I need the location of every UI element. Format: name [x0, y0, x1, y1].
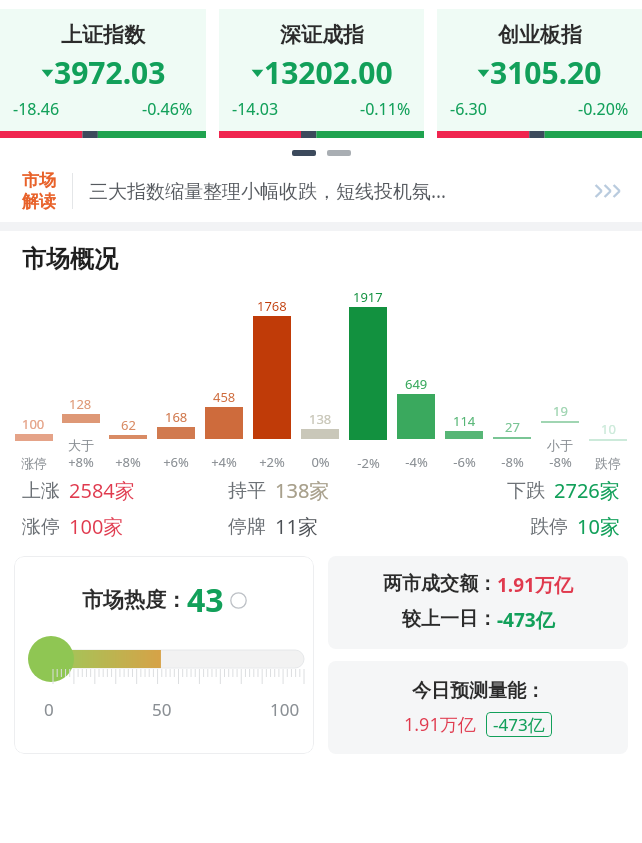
button[interactable]: 114 — [440, 288, 488, 471]
staticText: 跌停 — [595, 455, 621, 471]
staticText: 100 — [22, 415, 45, 433]
other: Help — [230, 592, 247, 609]
staticText: 三大指数缩量整理小幅收跌，短线投机氛… — [89, 178, 447, 204]
staticText: 上证指数 — [61, 22, 145, 48]
staticText: 1.91万亿 — [497, 572, 573, 598]
staticText: 创业板指 — [498, 22, 582, 48]
staticText: 0% — [311, 453, 330, 471]
staticText: 解读 — [22, 191, 56, 212]
staticText: 市场概况 — [22, 244, 118, 274]
staticText: 3105.20 — [490, 52, 602, 93]
staticText: 138家 — [275, 477, 330, 504]
staticText: 114 — [453, 412, 476, 430]
staticText: +2% — [259, 453, 285, 471]
staticText: 458 — [213, 388, 236, 406]
staticText: 2726家 — [554, 477, 620, 504]
button[interactable]: 128 — [57, 288, 104, 471]
staticText: 上涨 — [22, 479, 60, 503]
staticText: 11家 — [275, 513, 318, 540]
button[interactable]: 100 — [10, 288, 57, 471]
staticText: +8% — [68, 453, 94, 471]
button[interactable]: 两市成交额： — [328, 556, 628, 649]
staticText: +6% — [163, 453, 189, 471]
staticText: 下跌 — [507, 479, 545, 503]
button[interactable]: 今日预测量能： — [328, 661, 628, 754]
staticText: 2584家 — [69, 477, 135, 504]
staticText: 19 — [553, 402, 568, 420]
staticText: 43 — [187, 578, 224, 622]
staticText: 市场 — [22, 170, 56, 191]
button[interactable]: 市场 — [0, 160, 642, 222]
staticText: 10 — [601, 420, 616, 438]
staticText: 27 — [505, 418, 520, 436]
staticText: 1.91万亿 — [404, 712, 476, 737]
staticText: 涨停 — [22, 515, 60, 539]
button[interactable]: 深证成指 — [219, 9, 424, 138]
staticText: 10家 — [577, 513, 620, 540]
staticText: 今日预测量能： — [412, 679, 545, 703]
staticText: -6.30 — [450, 98, 487, 120]
button[interactable]: 创业板指 — [437, 9, 642, 138]
staticText: 0 — [44, 698, 54, 721]
button[interactable]: 649 — [392, 288, 440, 471]
staticText: -6% — [453, 453, 476, 471]
staticText: 大于 — [68, 437, 94, 453]
button[interactable]: 458 — [200, 288, 248, 471]
button[interactable]: 138 — [296, 288, 344, 471]
button[interactable]: 上证指数 — [0, 9, 206, 138]
staticText: -4% — [405, 453, 428, 471]
staticText: 跌停 — [530, 515, 568, 539]
staticText: 13202.00 — [264, 52, 393, 93]
staticText: -14.03 — [232, 98, 279, 120]
staticText: -0.46% — [142, 98, 193, 120]
staticText: 深证成指 — [280, 22, 364, 48]
staticText: 较上一日： — [402, 607, 497, 631]
staticText: -2% — [357, 454, 380, 471]
staticText: 停牌 — [228, 515, 266, 539]
staticText: 小于 — [547, 437, 573, 453]
staticText: 138 — [309, 410, 332, 428]
button[interactable]: 1768 — [248, 288, 296, 471]
button[interactable]: 市场热度： — [14, 556, 314, 754]
staticText: 市场热度： — [82, 587, 187, 613]
staticText: -8% — [549, 453, 572, 471]
button[interactable]: 1917 — [344, 288, 392, 471]
staticText: 持平 — [228, 479, 266, 503]
staticText: 涨停 — [21, 455, 47, 471]
staticText: -8% — [501, 453, 524, 471]
staticText: -0.11% — [360, 98, 411, 120]
button[interactable]: 10 — [584, 288, 632, 471]
staticText: +8% — [115, 453, 141, 471]
button[interactable]: 168 — [152, 288, 200, 471]
other: More — [592, 181, 628, 201]
staticText: 3972.03 — [54, 52, 166, 93]
staticText: 两市成交额： — [383, 572, 497, 596]
staticText: 649 — [405, 375, 428, 393]
staticText: 100家 — [69, 513, 124, 540]
staticText: 128 — [69, 395, 92, 413]
button[interactable]: 62 — [104, 288, 152, 471]
staticText: 62 — [121, 416, 136, 434]
staticText: +4% — [211, 453, 237, 471]
staticText: 1917 — [353, 288, 383, 306]
button[interactable]: 19 — [536, 288, 584, 471]
staticText: 1768 — [257, 297, 287, 315]
staticText: 168 — [165, 408, 188, 426]
button[interactable]: 27 — [488, 288, 536, 471]
staticText: -0.20% — [578, 98, 629, 120]
staticText: -473亿 — [497, 607, 555, 633]
staticText: -18.46 — [13, 98, 60, 120]
staticText: 50 — [152, 698, 172, 721]
staticText: -473亿 — [493, 713, 545, 736]
staticText: 100 — [270, 698, 300, 721]
